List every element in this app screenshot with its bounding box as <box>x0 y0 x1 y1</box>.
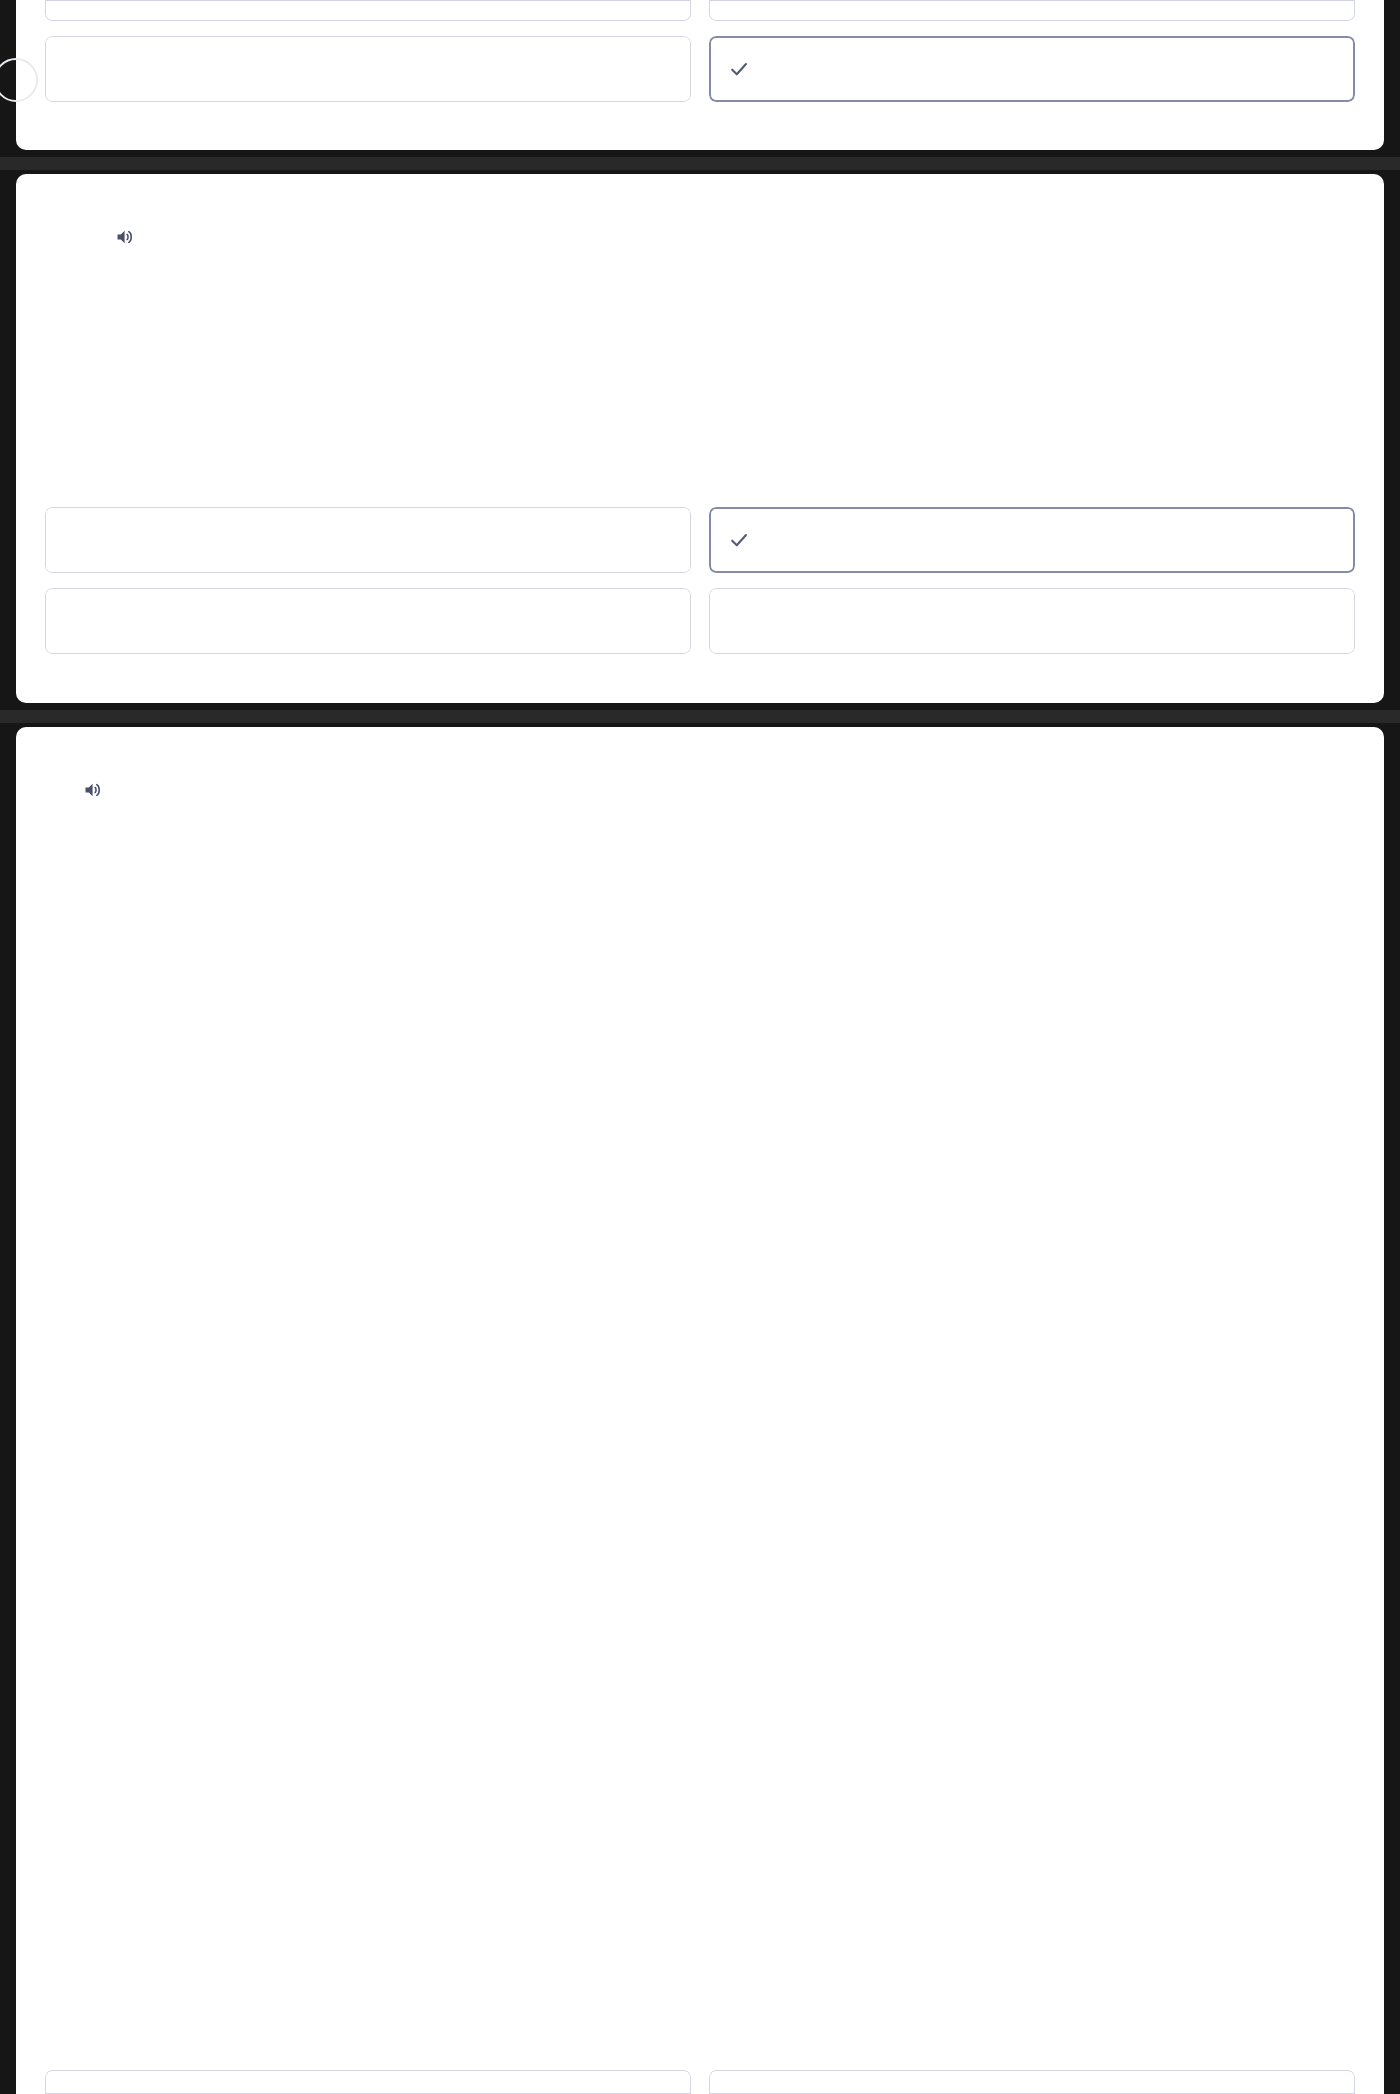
button[interactable]: Play pronunciation <box>112 224 138 250</box>
button[interactable]: Option 4 <box>709 588 1355 654</box>
button[interactable] <box>45 0 691 21</box>
button[interactable]: Play pronunciation <box>80 777 106 803</box>
button[interactable] <box>709 2070 1355 2094</box>
button[interactable]: Option 1 <box>45 507 691 573</box>
button[interactable]: Option A <box>45 36 691 102</box>
button[interactable]: Option 2, selected <box>709 507 1355 573</box>
button[interactable]: Option B, selected <box>709 36 1355 102</box>
button[interactable]: Option 3 <box>45 588 691 654</box>
button[interactable] <box>45 2070 691 2094</box>
button[interactable] <box>709 0 1355 21</box>
